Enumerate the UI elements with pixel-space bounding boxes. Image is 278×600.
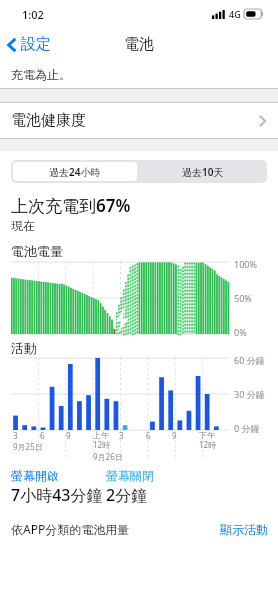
staticText: 過去24小時 [49,165,101,179]
staticText: 9 [172,430,177,441]
staticText: 9月25日 [13,441,43,452]
staticText: 2分鐘 [106,484,148,506]
staticText: 1:02 [22,7,44,22]
staticText: 6 [146,430,151,441]
staticText: 7小時43分鐘 [11,484,106,506]
staticText: 9 [66,430,71,441]
staticText: 電池健康度 [11,111,86,130]
staticText: 0 分鐘 [234,422,260,434]
staticText: 充電為止。 [11,67,71,82]
staticText: 活動 [11,340,37,356]
button[interactable]: 電池健康度 [0,103,278,138]
staticText: 顯示活動 [220,522,268,537]
staticText: 電池電量 [11,243,63,259]
staticText: 50% [234,292,252,304]
staticText: 60 分鐘 [234,354,265,366]
button[interactable]: 過去24小時 [13,162,137,181]
staticText: 30 分鐘 [234,388,265,400]
button[interactable]: 過去10天 [139,160,267,183]
staticText: 100% [234,258,257,270]
staticText: 3 [13,430,18,441]
staticText: 4G [229,8,241,20]
staticText: 下午 12時 [199,430,217,450]
staticText: 3 [119,430,124,441]
staticText: 電池 [124,35,154,54]
staticText: 0% [234,326,247,338]
button[interactable]: 顯示活動 [214,519,278,540]
staticText: 過去10天 [182,165,224,179]
button[interactable]: 設定 [0,31,59,58]
staticText: 螢幕開啟 [11,468,106,483]
staticText: 上次充電到67% [11,194,131,217]
staticText: 設定 [21,35,51,54]
staticText: 上午 12時 [93,430,111,450]
staticText: 9月26日 [93,451,123,462]
staticText: 6 [40,430,45,441]
staticText: 螢幕關閉 [106,468,154,483]
staticText: 依APP分類的電池用量 [11,521,130,537]
staticText: 現在 [11,218,35,233]
